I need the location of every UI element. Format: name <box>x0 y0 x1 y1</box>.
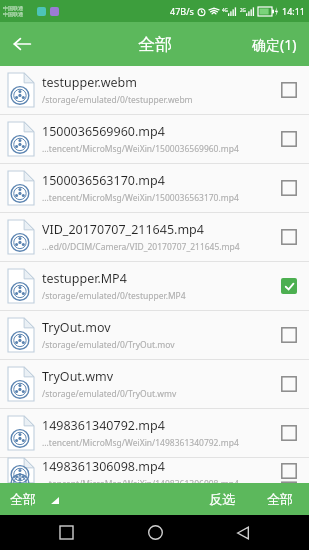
button[interactable]: Not selected <box>269 360 309 408</box>
staticText: TryOut.wmv <box>42 368 114 385</box>
staticText: VID_20170707_211645.mp4 <box>42 221 204 238</box>
staticText: 全部 <box>10 491 36 507</box>
button[interactable]: Selected <box>269 262 309 310</box>
staticText: testupper.MP4 <box>42 270 127 287</box>
staticText: 1500036563170.mp4 <box>42 172 165 189</box>
button[interactable]: Back <box>0 22 44 66</box>
button[interactable]: Not selected <box>269 409 309 457</box>
button[interactable]: testupper.webm <box>0 66 309 114</box>
staticText: 1498361306098.mp4 <box>42 458 165 475</box>
staticText: 确定(1) <box>252 35 297 54</box>
button[interactable]: 1500036569960.mp4 <box>0 115 309 163</box>
button[interactable]: 1498361340792.mp4 <box>0 409 309 457</box>
staticText: ...ed/0/DCIM/Camera/VID_20170707_211645.… <box>42 241 240 253</box>
button[interactable]: 全部 <box>10 491 59 507</box>
staticText: ...tencent/MicroMsg/WeiXin/1500036569960… <box>42 143 239 155</box>
staticText: /storage/emulated/0/TryOut.wmv <box>42 388 177 400</box>
staticText: testupper.webm <box>42 74 137 91</box>
button[interactable]: testupper.MP4 <box>0 262 309 310</box>
button[interactable]: TryOut.wmv <box>0 360 309 408</box>
button[interactable]: Not selected <box>269 458 309 483</box>
button[interactable]: VID_20170707_211645.mp4 <box>0 213 309 261</box>
staticText: 1500036569960.mp4 <box>42 123 165 140</box>
staticText: 47B/s <box>170 5 194 17</box>
button[interactable]: Not selected <box>269 66 309 114</box>
staticText: 14:11 <box>282 5 306 17</box>
staticText: 全部 <box>138 34 172 55</box>
staticText: 中国联通 <box>3 11 23 17</box>
staticText: 2G <box>240 7 246 13</box>
button[interactable]: 反选 <box>209 491 235 507</box>
button[interactable]: 全部 <box>267 491 293 507</box>
button[interactable]: Not selected <box>269 164 309 212</box>
button[interactable]: Back <box>221 515 265 550</box>
button[interactable]: Recents <box>44 515 88 550</box>
button[interactable]: 1500036563170.mp4 <box>0 164 309 212</box>
staticText: 全部 <box>267 491 293 507</box>
staticText: /storage/emulated/0/testupper.MP4 <box>42 290 186 302</box>
staticText: 中国联通 <box>3 5 23 11</box>
staticText: /storage/emulated/0/testupper.webm <box>42 94 193 106</box>
button[interactable]: TryOut.mov <box>0 311 309 359</box>
staticText: ...tencent/MicroMsg/WeiXin/1498361340792… <box>42 437 239 449</box>
staticText: 4G <box>222 7 228 13</box>
staticText: ...tencent/MicroMsg/WeiXin/1498361306098… <box>42 478 239 483</box>
staticText: 1498361340792.mp4 <box>42 417 165 434</box>
button[interactable]: Not selected <box>269 213 309 261</box>
button[interactable]: 确定(1) <box>252 35 297 54</box>
button[interactable]: Not selected <box>269 115 309 163</box>
staticText: /storage/emulated/0/TryOut.mov <box>42 339 175 351</box>
staticText: TryOut.mov <box>42 319 111 336</box>
button[interactable]: Not selected <box>269 311 309 359</box>
staticText: 反选 <box>209 491 235 507</box>
button[interactable]: Home <box>133 515 177 550</box>
staticText: ...tencent/MicroMsg/WeiXin/1500036563170… <box>42 192 239 204</box>
button[interactable]: 1498361306098.mp4 <box>0 458 309 483</box>
